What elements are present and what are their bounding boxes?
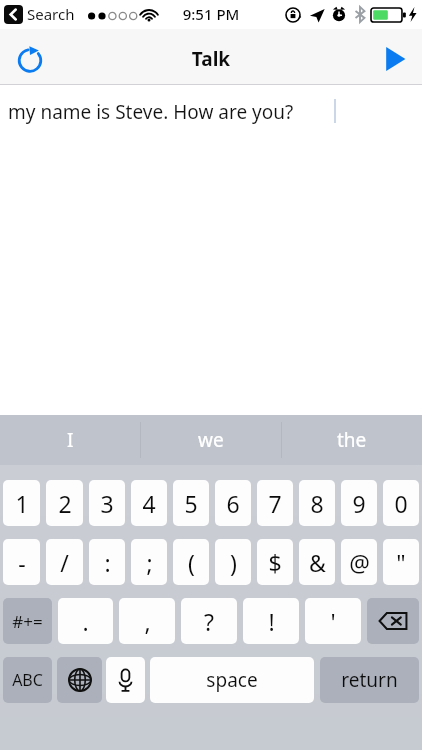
button[interactable]: Dictate [106,657,145,703]
button[interactable]: ? [181,598,237,644]
button[interactable]: ! [243,598,299,644]
staticText: ) [230,547,237,578]
button[interactable]: 5 [173,480,209,526]
button[interactable]: ABC [3,657,52,703]
staticText: . [82,606,89,637]
staticText: ? [204,606,214,637]
staticText: return [341,667,398,693]
button[interactable]: $ [257,539,293,585]
button[interactable]: ( [173,539,209,585]
staticText: ; [146,547,153,578]
staticText: , [144,606,151,637]
button[interactable]: return [320,657,419,703]
button[interactable]: : [89,539,125,585]
button[interactable]: 7 [257,480,293,526]
staticText: 2 [58,488,72,519]
staticText: ' [330,606,336,637]
staticText: ABC [12,669,43,691]
staticText: space [206,667,258,693]
staticText: Talk [0,46,422,72]
staticText: 6 [226,488,240,519]
staticText: 8 [310,488,324,519]
button[interactable]: Change keyboard language [57,657,102,703]
button[interactable]: - [3,539,40,585]
staticText: & [309,547,326,578]
button[interactable]: 4 [131,480,167,526]
staticText: my name is Steve. How are you? [8,99,294,125]
staticText: @ [349,547,370,578]
staticText: 7 [268,488,282,519]
staticText: / [60,547,69,578]
button[interactable]: & [299,539,335,585]
button[interactable]: 8 [299,480,335,526]
staticText: #+= [12,610,43,633]
staticText: 1 [15,488,29,519]
staticText: $ [268,547,282,578]
staticText: 9:51 PM [0,4,422,24]
button[interactable]: Refresh [8,37,52,81]
staticText: the [337,427,367,453]
staticText: ( [188,547,195,578]
button[interactable]: 0 [383,480,419,526]
button[interactable]: I [0,415,140,465]
button[interactable]: 6 [215,480,251,526]
button[interactable]: #+= [3,598,52,644]
button[interactable]: Backspace [367,598,419,644]
button[interactable]: ' [305,598,361,644]
staticText: 3 [100,488,114,519]
button[interactable]: @ [341,539,377,585]
staticText: 0 [394,488,408,519]
staticText: : [104,547,111,578]
button[interactable]: Play [372,37,416,81]
staticText: " [396,547,406,578]
button[interactable]: 1 [3,480,40,526]
staticText: we [198,427,224,453]
button[interactable]: space [150,657,314,703]
staticText: 4 [142,488,156,519]
button[interactable]: we [141,415,281,465]
button[interactable]: , [119,598,175,644]
button[interactable]: ; [131,539,167,585]
button[interactable]: 3 [89,480,125,526]
button[interactable]: 9 [341,480,377,526]
staticText: I [67,427,74,453]
button[interactable]: the [282,415,422,465]
staticText: Search [27,4,75,24]
button[interactable]: / [46,539,83,585]
staticText: 9 [352,488,366,519]
staticText: ! [268,606,275,637]
staticText: - [18,547,26,578]
button[interactable]: 2 [46,480,83,526]
button[interactable]: . [58,598,113,644]
button[interactable]: Back to Search [4,5,23,24]
staticText: 5 [184,488,198,519]
button[interactable]: " [383,539,419,585]
button[interactable]: ) [215,539,251,585]
